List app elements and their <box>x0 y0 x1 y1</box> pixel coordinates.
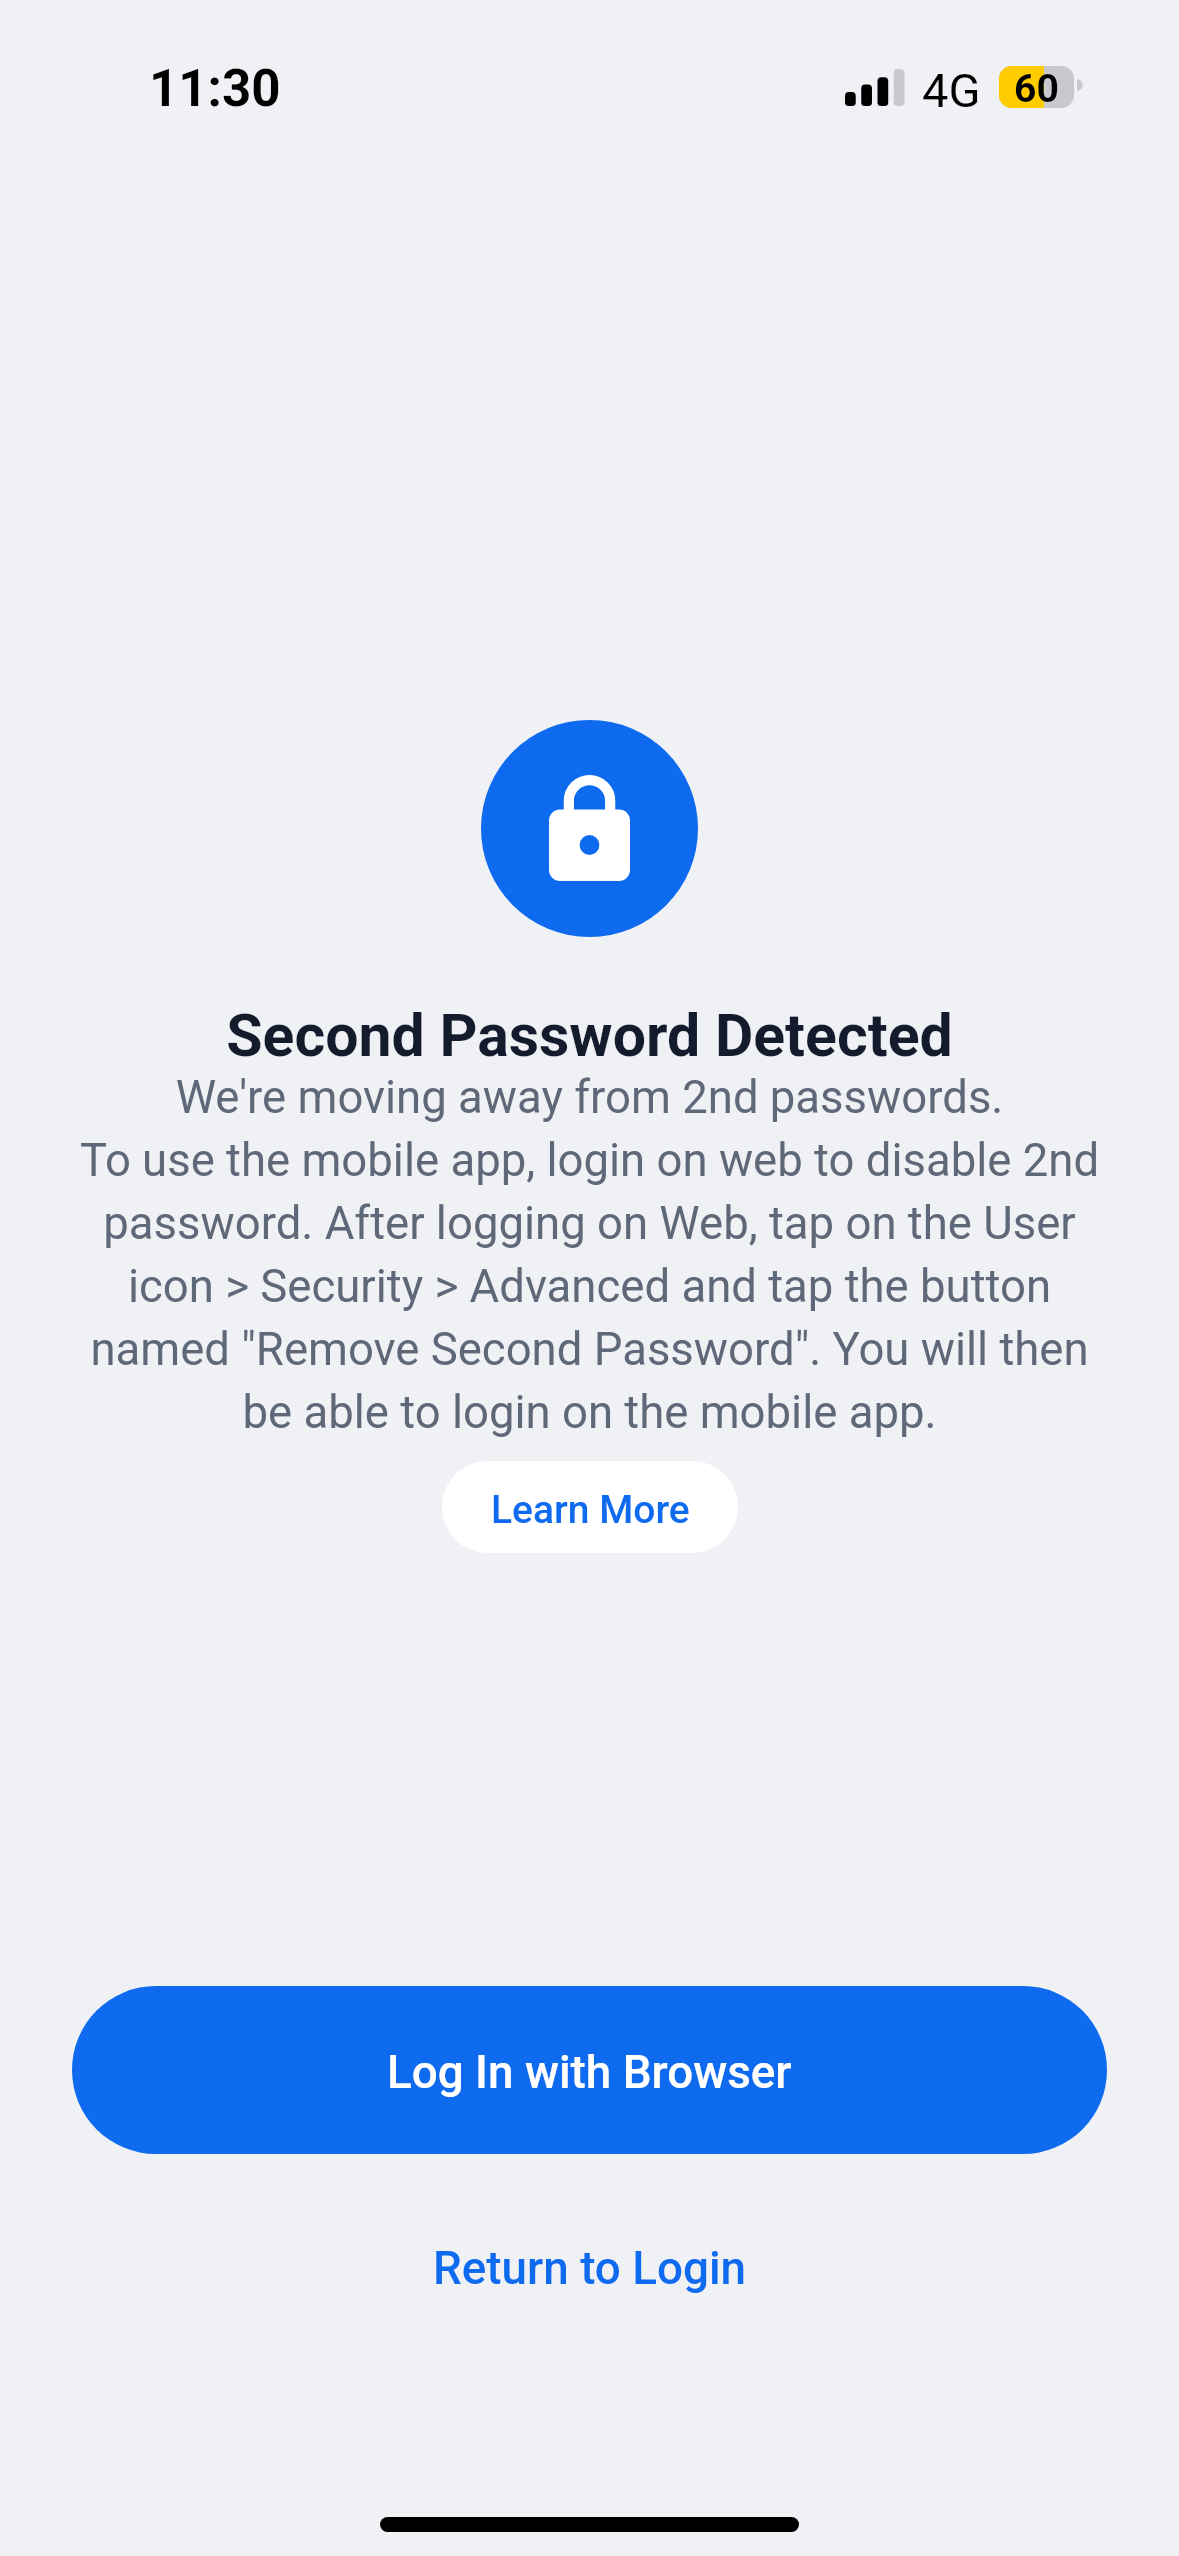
staticText: Return to Login <box>433 2242 747 2296</box>
staticText: Second Password Detected <box>226 1001 953 1070</box>
other: Locked account <box>481 720 698 937</box>
button[interactable]: Return to Login <box>393 2230 787 2308</box>
staticText: 60 <box>1014 66 1059 112</box>
staticText: 11:30 <box>149 59 281 119</box>
staticText: Learn More <box>491 1487 690 1533</box>
button[interactable]: Learn More <box>442 1461 738 1553</box>
other: Battery 60 percent <box>999 64 1074 110</box>
other: Cellular signal <box>845 69 904 106</box>
staticText: Log In with Browser <box>387 2046 792 2100</box>
staticText: 4G <box>922 63 981 118</box>
button[interactable]: Log In with Browser <box>72 1986 1107 2154</box>
staticText: We're moving away from 2nd passwords. To… <box>72 1071 1107 1439</box>
